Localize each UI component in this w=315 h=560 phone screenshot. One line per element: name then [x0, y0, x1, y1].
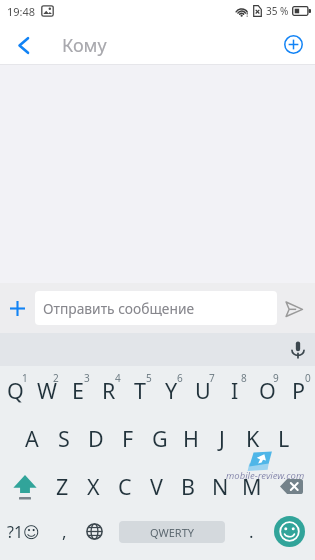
staticText: 1: [22, 371, 28, 385]
staticText: P: [292, 376, 306, 405]
button[interactable]: Z: [47, 462, 78, 510]
button[interactable]: Add recipient: [271, 22, 315, 64]
staticText: .: [249, 520, 254, 543]
button[interactable]: M: [236, 462, 268, 510]
button[interactable]: Shift: [0, 462, 47, 510]
staticText: 19:48: [7, 4, 36, 19]
button[interactable]: U: [187, 366, 219, 414]
staticText: S: [58, 424, 70, 453]
staticText: R: [102, 376, 116, 405]
button[interactable]: Отправить сообщение: [35, 291, 277, 325]
staticText: J: [219, 424, 225, 453]
button[interactable]: H: [175, 414, 206, 462]
staticText: 35 %: [266, 4, 289, 18]
staticText: 2: [53, 371, 59, 385]
button[interactable]: I: [219, 366, 251, 414]
button[interactable]: S: [48, 414, 80, 462]
staticText: W: [37, 376, 57, 405]
staticText: L: [278, 424, 290, 453]
button[interactable]: Send: [277, 283, 315, 333]
staticText: C: [118, 472, 132, 501]
button[interactable]: G: [144, 414, 175, 462]
staticText: D: [88, 424, 104, 453]
staticText: 6: [177, 371, 183, 385]
staticText: X: [87, 472, 100, 501]
button[interactable]: X: [78, 462, 109, 510]
staticText: M: [242, 472, 262, 501]
staticText: K: [246, 424, 260, 453]
button[interactable]: B: [172, 462, 204, 510]
button[interactable]: L: [268, 414, 299, 462]
button[interactable]: W: [31, 366, 62, 414]
button[interactable]: Q: [0, 366, 31, 414]
button[interactable]: N: [204, 462, 236, 510]
staticText: mobile-review.com: [226, 469, 305, 482]
button[interactable]: D: [80, 414, 112, 462]
staticText: F: [122, 424, 134, 453]
button[interactable]: R: [93, 366, 124, 414]
staticText: Q: [7, 376, 24, 405]
staticText: V: [150, 472, 163, 501]
button[interactable]: C: [109, 462, 140, 510]
button[interactable]: J: [206, 414, 237, 462]
staticText: Y: [165, 376, 178, 405]
staticText: E: [72, 376, 84, 405]
button[interactable]: E: [62, 366, 93, 414]
staticText: ,: [62, 520, 67, 543]
button[interactable]: F: [112, 414, 144, 462]
staticText: T: [134, 376, 146, 405]
button[interactable]: ,: [47, 510, 81, 553]
button[interactable]: Change language: [81, 510, 107, 553]
staticText: ?1☺: [7, 521, 40, 543]
button[interactable]: Back: [0, 22, 46, 64]
staticText: 8: [241, 371, 247, 385]
staticText: 0: [305, 371, 311, 385]
staticText: I: [231, 376, 239, 405]
staticText: G: [152, 424, 168, 453]
button[interactable]: Voice input: [281, 333, 315, 366]
button[interactable]: K: [237, 414, 268, 462]
staticText: 4: [115, 371, 121, 385]
button[interactable]: P: [283, 366, 315, 414]
button[interactable]: Attach: [0, 283, 34, 333]
button[interactable]: QWERTY: [119, 521, 225, 543]
staticText: 7: [209, 371, 215, 385]
staticText: O: [259, 376, 276, 405]
button[interactable]: Y: [155, 366, 187, 414]
button[interactable]: ?1☺: [0, 510, 47, 553]
staticText: 9: [273, 371, 279, 385]
staticText: 3: [84, 371, 90, 385]
button[interactable]: Emoji: [268, 510, 311, 553]
staticText: A: [25, 424, 39, 453]
button[interactable]: T: [124, 366, 155, 414]
button[interactable]: V: [140, 462, 172, 510]
staticText: B: [181, 472, 195, 501]
button[interactable]: O: [251, 366, 283, 414]
staticText: N: [212, 472, 229, 501]
staticText: Отправить сообщение: [43, 299, 195, 318]
staticText: QWERTY: [150, 525, 195, 540]
button[interactable]: Backspace: [268, 462, 315, 510]
staticText: U: [195, 376, 211, 405]
staticText: 5: [146, 371, 152, 385]
staticText: Кому: [62, 33, 107, 58]
button[interactable]: .: [238, 510, 264, 553]
staticText: Z: [56, 472, 69, 501]
staticText: H: [183, 424, 199, 453]
button[interactable]: A: [16, 414, 48, 462]
